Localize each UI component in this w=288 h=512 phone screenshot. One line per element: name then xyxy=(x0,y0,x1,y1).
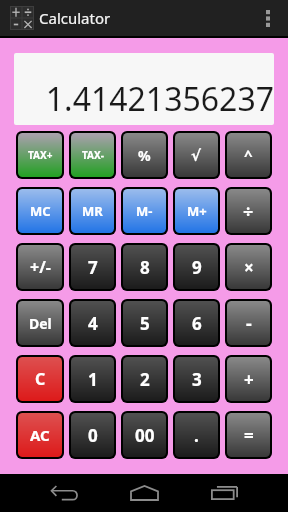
button[interactable]: TAX+ xyxy=(18,133,62,177)
staticText: 6 xyxy=(192,312,202,335)
staticText: C xyxy=(35,368,46,390)
button[interactable]: Recents xyxy=(184,474,264,512)
staticText: TAX- xyxy=(82,148,104,162)
button[interactable]: 7 xyxy=(71,245,114,289)
button[interactable]: More options xyxy=(252,0,283,36)
button[interactable]: Del xyxy=(18,301,62,345)
staticText: ^ xyxy=(244,145,253,165)
button[interactable]: 8 xyxy=(123,245,166,289)
staticText: TAX+ xyxy=(28,148,53,162)
staticText: +/- xyxy=(30,256,51,278)
button[interactable]: - xyxy=(227,301,270,345)
staticText: 3 xyxy=(192,368,202,391)
staticText: 5 xyxy=(140,312,150,335)
button[interactable]: 0 xyxy=(71,413,114,457)
button[interactable]: 4 xyxy=(71,301,114,345)
button[interactable]: 2 xyxy=(123,357,166,401)
staticText: × xyxy=(244,256,254,279)
staticText: M- xyxy=(136,202,153,220)
button[interactable]: C xyxy=(18,357,62,401)
button[interactable]: 00 xyxy=(123,413,166,457)
staticText: 1 xyxy=(88,368,98,391)
button[interactable]: M+ xyxy=(175,189,218,233)
button[interactable]: +/- xyxy=(18,245,62,289)
staticText: M+ xyxy=(187,202,207,220)
staticText: Del xyxy=(29,314,52,333)
staticText: MC xyxy=(30,202,51,220)
staticText: MR xyxy=(82,202,103,220)
staticText: 9 xyxy=(192,256,202,279)
button[interactable]: % xyxy=(123,133,166,177)
staticText: 1.41421356237 xyxy=(45,77,274,121)
button[interactable]: AC xyxy=(18,413,62,457)
button[interactable]: + xyxy=(227,357,270,401)
staticText: AC xyxy=(30,425,50,445)
button[interactable]: 1 xyxy=(71,357,114,401)
staticText: Calculator xyxy=(39,8,111,28)
button[interactable]: ^ xyxy=(227,133,270,177)
button[interactable]: √ xyxy=(175,133,218,177)
button[interactable]: × xyxy=(227,245,270,289)
button[interactable]: 5 xyxy=(123,301,166,345)
staticText: 8 xyxy=(140,256,150,279)
staticText: % xyxy=(138,146,151,165)
button[interactable]: TAX- xyxy=(71,133,114,177)
staticText: 2 xyxy=(140,368,150,391)
staticText: 0 xyxy=(88,424,98,447)
button[interactable]: Back xyxy=(24,474,104,512)
staticText: √ xyxy=(191,147,202,164)
staticText: ÷ xyxy=(243,199,254,224)
staticText: 7 xyxy=(88,256,98,279)
button[interactable]: 3 xyxy=(175,357,218,401)
staticText: = xyxy=(244,424,254,447)
staticText: 00 xyxy=(135,424,155,447)
button[interactable]: Home xyxy=(104,474,184,512)
button[interactable]: 9 xyxy=(175,245,218,289)
staticText: - xyxy=(246,311,252,336)
button[interactable]: 6 xyxy=(175,301,218,345)
button[interactable]: MC xyxy=(18,189,62,233)
staticText: 4 xyxy=(88,312,98,335)
staticText: . xyxy=(194,424,199,447)
button[interactable]: M- xyxy=(123,189,166,233)
button[interactable]: MR xyxy=(71,189,114,233)
staticText: + xyxy=(244,368,254,391)
button[interactable]: ÷ xyxy=(227,189,270,233)
button[interactable]: . xyxy=(175,413,218,457)
button[interactable]: = xyxy=(227,413,270,457)
